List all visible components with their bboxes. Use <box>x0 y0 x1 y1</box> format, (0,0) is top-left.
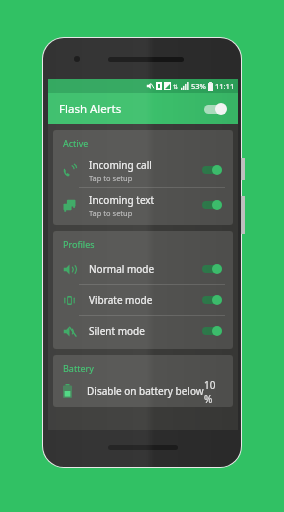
button[interactable]: Silent mode <box>53 316 233 346</box>
staticText: Vibrate mode <box>89 293 153 307</box>
button[interactable]: Normal mode <box>53 254 233 284</box>
staticText: 10% <box>204 378 223 404</box>
staticText: 53% <box>191 81 206 91</box>
staticText: Flash Alerts <box>59 101 122 117</box>
button[interactable]: Incoming text <box>53 188 233 222</box>
staticText: Silent mode <box>89 324 145 338</box>
button[interactable]: Toggle Flash Alerts <box>202 99 228 119</box>
button[interactable]: Toggle <box>200 322 224 340</box>
staticText: Incoming call <box>89 158 152 172</box>
button[interactable]: Disable on battery below <box>53 378 233 404</box>
button[interactable]: Vibrate mode <box>53 285 233 315</box>
button[interactable]: Toggle <box>200 291 224 309</box>
button[interactable]: Toggle <box>200 196 224 214</box>
staticText: Disable on battery below <box>87 384 204 398</box>
button[interactable]: Toggle <box>200 260 224 278</box>
staticText: ⇅ <box>173 83 179 90</box>
button[interactable]: Toggle <box>200 161 224 179</box>
staticText: Incoming text <box>89 193 155 207</box>
staticText: Tap to setup <box>89 208 133 218</box>
staticText: Normal mode <box>89 262 155 276</box>
staticText: Active <box>63 137 89 149</box>
staticText: Profiles <box>63 238 95 250</box>
staticText: Tap to setup <box>89 173 133 183</box>
button[interactable]: Incoming call <box>53 153 233 187</box>
staticText: Battery <box>63 362 94 374</box>
staticText: 11:11 <box>215 81 235 91</box>
